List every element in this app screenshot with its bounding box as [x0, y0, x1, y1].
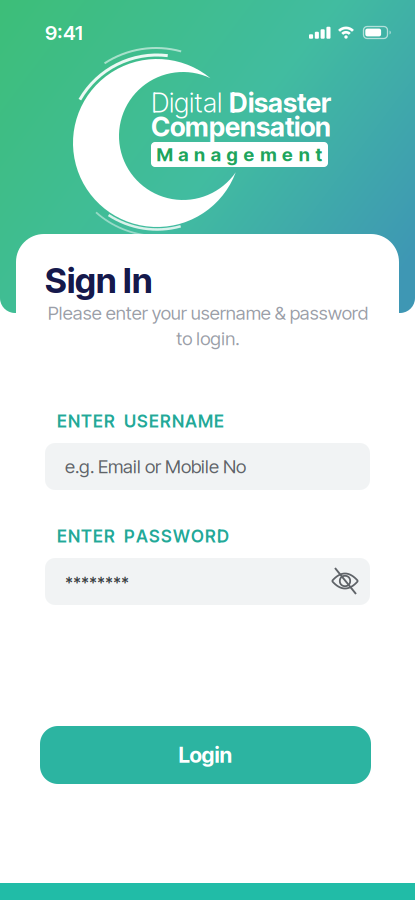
staticText: E N T E R U S E R N A M E [57, 411, 224, 431]
staticText: E N T E R P A S S W O R D [57, 526, 229, 546]
button[interactable]: Show password [326, 562, 364, 600]
button[interactable]: ******** [45, 558, 370, 605]
staticText: Sign In [45, 260, 152, 301]
staticText: Compensation [151, 111, 331, 142]
button[interactable]: Login [40, 726, 371, 784]
staticText: 9:41 [45, 21, 83, 45]
staticText: Management [156, 143, 323, 165]
staticText: Login [178, 742, 232, 768]
staticText: Please enter your username & password to… [47, 302, 367, 349]
staticText: Digital Disaster [151, 87, 331, 118]
staticText: ******** [65, 574, 129, 592]
button[interactable]: e.g. Email or Mobile No [45, 443, 370, 490]
staticText: e.g. Email or Mobile No [65, 455, 246, 477]
